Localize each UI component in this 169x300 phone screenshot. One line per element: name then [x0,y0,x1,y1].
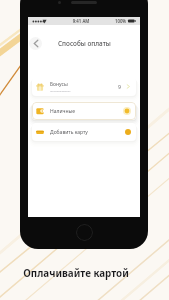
button[interactable]: Наличные [32,102,136,120]
staticText: не использованы [50,89,71,92]
staticText: Наличные [50,108,76,115]
staticText: Бонусы [50,81,68,88]
button[interactable]: Добавить карту [32,123,136,141]
staticText: Оплачивайте картой [23,267,129,280]
staticText: Добавить карту [50,129,88,136]
staticText: 9:41 AM [47,18,115,24]
button[interactable]: Бонусы [32,77,136,96]
staticText: 9 [118,83,121,90]
staticText: 100% [115,18,127,24]
staticText: Способы оплаты [58,39,111,48]
button[interactable]: Back [29,37,42,50]
